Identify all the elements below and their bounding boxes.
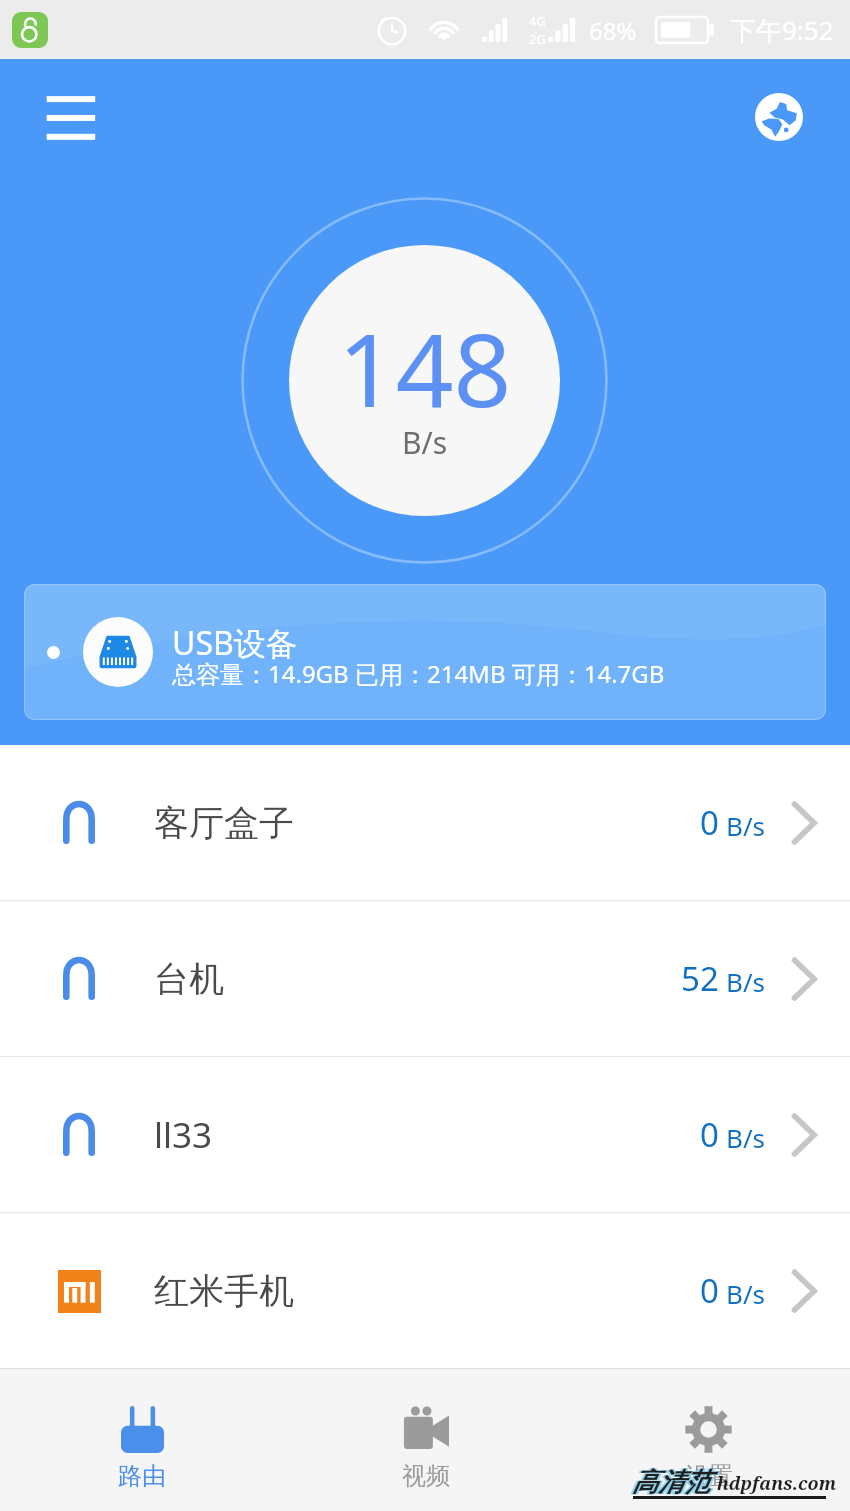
staticText: 高清范 (630, 1466, 708, 1499)
staticText: 4G (529, 12, 546, 30)
staticText: 设置 (685, 1461, 733, 1491)
staticText: 68% (589, 14, 637, 47)
staticText: B/s (726, 808, 766, 843)
staticText: ll33 (154, 1111, 213, 1159)
button[interactable]: ll33 (0, 1057, 850, 1212)
button[interactable]: 客厅盒子 (0, 745, 850, 900)
staticText: 148 (338, 299, 512, 437)
staticText: 高清范 (634, 1466, 712, 1499)
staticText: 路由 (118, 1461, 166, 1491)
button[interactable]: 视频 (284, 1369, 567, 1511)
staticText: USB设备 (172, 621, 298, 665)
staticText: 0 (700, 1268, 719, 1313)
button[interactable]: USB设备 (24, 584, 826, 720)
staticText: 红米手机 (154, 1269, 294, 1313)
staticText: 52 (681, 956, 719, 1001)
button[interactable]: Menu (22, 59, 120, 157)
staticText: B/s (726, 1276, 766, 1311)
button[interactable]: Network (731, 69, 827, 165)
staticText: 0 (700, 1112, 719, 1157)
staticText: B/s (726, 1120, 766, 1155)
staticText: hdpfans.com (717, 1471, 837, 1496)
button[interactable]: 台机 (0, 901, 850, 1056)
staticText: 高清范 (632, 1466, 710, 1499)
staticText: 客厅盒子 (154, 801, 294, 845)
staticText: 下午9:52 (730, 12, 834, 48)
staticText: 0 (700, 800, 719, 845)
button[interactable]: 设置 (567, 1369, 850, 1511)
button[interactable]: 红米手机 (0, 1213, 850, 1368)
staticText: 视频 (402, 1461, 450, 1491)
staticText: B/s (726, 964, 766, 999)
staticText: 总容量：14.9GB 已用：214MB 可用：14.7GB (172, 657, 665, 690)
button[interactable]: 路由 (0, 1369, 284, 1511)
staticText: 2G (529, 30, 546, 48)
staticText: 台机 (154, 957, 224, 1001)
staticText: B/s (402, 422, 448, 463)
